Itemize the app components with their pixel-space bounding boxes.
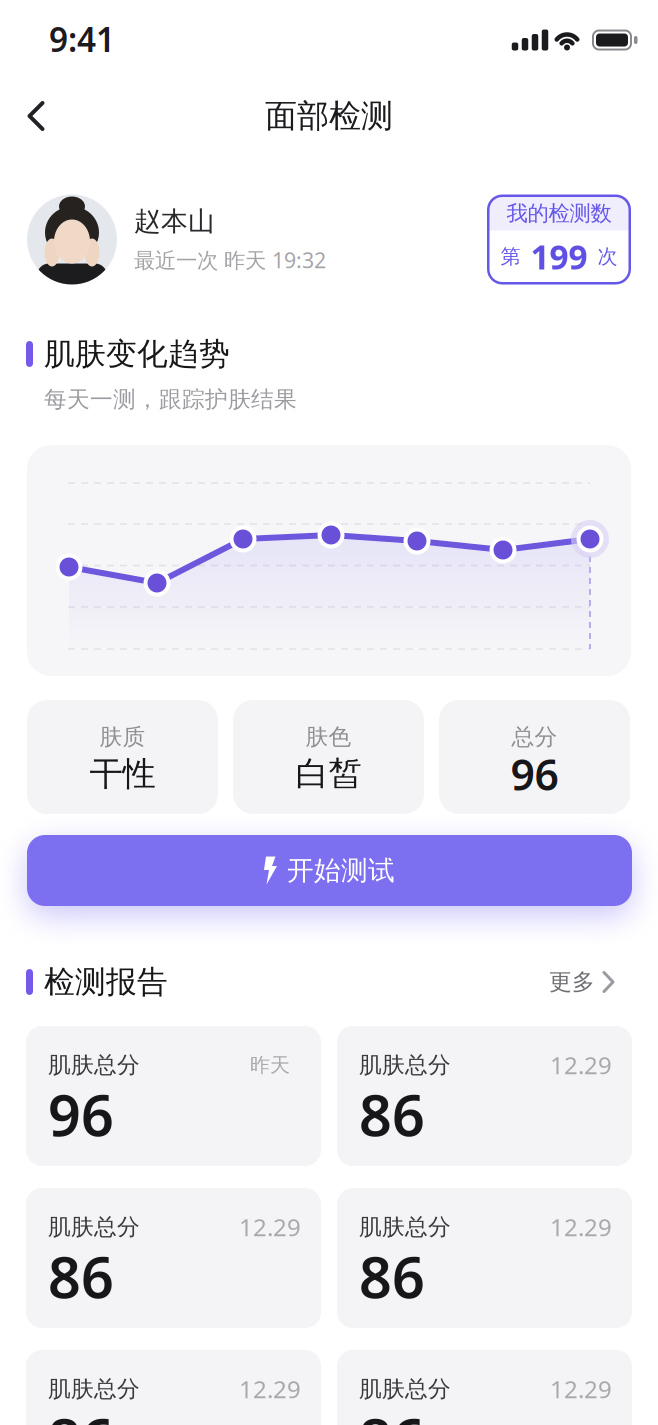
staticText: 更多 (549, 968, 595, 996)
staticText: 肌肤总分 (359, 1375, 451, 1403)
staticText: 86 (359, 1400, 425, 1425)
staticText: 肌肤总分 (359, 1213, 451, 1241)
staticText: 86 (48, 1400, 114, 1425)
staticText: 12.29 (550, 1373, 612, 1405)
button[interactable]: 开始测试 (27, 835, 632, 906)
button[interactable]: 肌肤总分 (337, 1026, 632, 1166)
staticText: 9:41 (49, 17, 115, 61)
staticText: 开始测试 (287, 854, 395, 887)
staticText: 第 (500, 244, 520, 269)
staticText: 我的检测数 (506, 200, 611, 227)
staticText: 检测报告 (44, 963, 168, 1001)
staticText: 白皙 (295, 753, 361, 794)
button[interactable]: 肌肤总分 (26, 1350, 321, 1425)
button[interactable]: 更多 (549, 968, 614, 996)
staticText: 每天一测，跟踪护肤结果 (44, 386, 297, 413)
staticText: 12.29 (550, 1211, 612, 1243)
staticText: 最近一次 昨天 19:32 (134, 246, 326, 274)
staticText: 96 (510, 746, 558, 802)
staticText: 86 (359, 1076, 425, 1152)
staticText: 肤色 (305, 723, 351, 751)
staticText: 肌肤总分 (48, 1375, 140, 1403)
staticText: 肤质 (99, 723, 145, 751)
staticText: 次 (597, 244, 617, 269)
staticText: 86 (359, 1238, 425, 1314)
staticText: 199 (530, 234, 587, 279)
staticText: 肌肤总分 (359, 1051, 451, 1079)
staticText: 86 (48, 1238, 114, 1314)
button[interactable]: Back (17, 91, 58, 141)
staticText: 干性 (89, 753, 155, 794)
button[interactable]: 肌肤总分 (26, 1188, 321, 1328)
staticText: 12.29 (239, 1373, 301, 1405)
staticText: 肌肤总分 (48, 1213, 140, 1241)
staticText: 肌肤总分 (48, 1051, 140, 1079)
staticText: 赵本山 (134, 205, 215, 238)
staticText: 12.29 (550, 1049, 612, 1081)
staticText: 肌肤变化趋势 (44, 335, 230, 373)
button[interactable]: 肌肤总分 (337, 1350, 632, 1425)
staticText: 总分 (511, 723, 557, 751)
staticText: 面部检测 (265, 96, 393, 136)
staticText: 昨天 (250, 1053, 290, 1077)
staticText: 96 (48, 1076, 114, 1152)
button[interactable]: 肌肤总分 (26, 1026, 321, 1166)
staticText: 12.29 (239, 1211, 301, 1243)
button[interactable]: 肌肤总分 (337, 1188, 632, 1328)
